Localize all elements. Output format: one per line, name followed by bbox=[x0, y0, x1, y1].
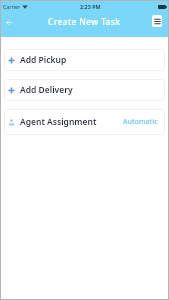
staticText: Add Delivery bbox=[20, 84, 73, 96]
staticText: 2:23 PM bbox=[80, 3, 101, 10]
staticText: Add Pickup bbox=[20, 54, 67, 66]
staticText: Create New Task bbox=[48, 16, 121, 28]
button[interactable]: Back bbox=[3, 16, 15, 28]
button[interactable]: Add Pickup bbox=[4, 49, 165, 71]
staticText: Carrier bbox=[3, 3, 21, 10]
staticText: Agent Assignment bbox=[20, 116, 97, 128]
button[interactable]: Filter bbox=[152, 15, 162, 27]
staticText: Automatic bbox=[123, 117, 158, 127]
button[interactable]: Agent Assignment bbox=[4, 109, 165, 135]
button[interactable]: Add Delivery bbox=[4, 79, 165, 101]
